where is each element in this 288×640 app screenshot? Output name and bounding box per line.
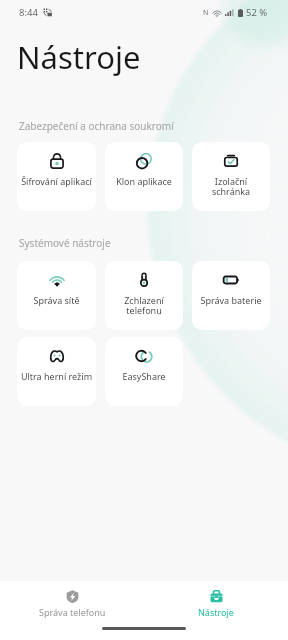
button[interactable]: Nástroje: [144, 590, 288, 618]
button[interactable]: Zchlazení telefonu: [105, 261, 183, 330]
staticText: Systémové nástroje: [19, 236, 111, 250]
staticText: Izolační schránka: [192, 175, 270, 198]
staticText: EasyShare: [105, 370, 183, 382]
button[interactable]: EasyShare: [105, 337, 183, 406]
staticText: Správa telefonu: [39, 606, 106, 618]
button[interactable]: Klon aplikace: [105, 142, 183, 211]
staticText: Zchlazení telefonu: [105, 294, 183, 317]
staticText: 8:44: [19, 6, 38, 19]
staticText: Správa baterie: [192, 294, 270, 306]
other: Správa telefonu: [66, 590, 79, 603]
button[interactable]: Správa sítě: [17, 261, 96, 330]
staticText: N: [203, 8, 209, 18]
staticText: Klon aplikace: [105, 175, 183, 187]
button[interactable]: Izolační schránka: [192, 142, 270, 211]
staticText: Správa sítě: [17, 294, 96, 306]
button[interactable]: Správa baterie: [192, 261, 270, 330]
button[interactable]: Ultra herní režim: [17, 337, 96, 406]
staticText: Zabezpečení a ochrana soukromí: [19, 119, 174, 133]
staticText: Nástroje: [198, 606, 234, 618]
button[interactable]: Šifrování aplikací: [17, 142, 96, 211]
button[interactable]: Správa telefonu: [0, 590, 144, 618]
other: Nástroje: [210, 590, 223, 603]
staticText: Ultra herní režim: [17, 370, 96, 382]
staticText: Šifrování aplikací: [17, 175, 96, 187]
staticText: 52 %: [246, 6, 268, 19]
staticText: Nástroje: [17, 36, 141, 78]
